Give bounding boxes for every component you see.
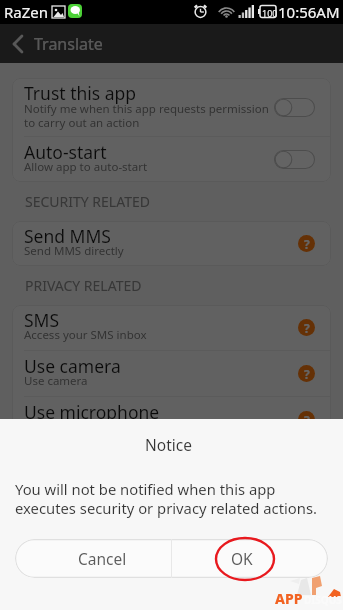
button[interactable]: Use camera bbox=[12, 351, 331, 396]
staticText: DISQUS bbox=[304, 593, 342, 607]
button[interactable]: Cancel bbox=[15, 539, 171, 578]
staticText: Use microphone bbox=[24, 400, 160, 424]
staticText: APP bbox=[275, 589, 303, 608]
staticText: Send MMS directly bbox=[24, 243, 124, 259]
staticText: PRIVACY RELATED bbox=[25, 276, 142, 295]
button[interactable]: Toggle bbox=[274, 150, 315, 169]
staticText: Trust this app bbox=[24, 81, 137, 105]
button[interactable]: Back bbox=[6, 32, 30, 56]
button[interactable]: SMS bbox=[12, 305, 331, 350]
button[interactable]: OK bbox=[172, 539, 328, 578]
button[interactable]: Use microphone bbox=[12, 397, 331, 442]
button[interactable]: Help bbox=[298, 411, 315, 428]
staticText: ? bbox=[304, 320, 310, 336]
button[interactable]: Help bbox=[298, 319, 315, 336]
button[interactable]: Toggle bbox=[274, 98, 315, 117]
staticText: RaZen bbox=[4, 2, 49, 22]
button[interactable]: Help bbox=[298, 235, 315, 252]
staticText: Translate bbox=[34, 33, 103, 55]
staticText: Notify me when this app requests permiss… bbox=[24, 101, 269, 131]
staticText: 10:56AM bbox=[278, 2, 340, 22]
button[interactable]: Send MMS bbox=[12, 221, 331, 266]
staticText: ? bbox=[304, 236, 310, 252]
staticText: Allow app to auto-start bbox=[24, 159, 148, 175]
staticText: Use camera bbox=[24, 354, 121, 378]
staticText: Send MMS bbox=[24, 224, 111, 248]
staticText: ? bbox=[304, 366, 310, 382]
button[interactable]: Help bbox=[298, 365, 315, 382]
staticText: Access your SMS inbox bbox=[24, 327, 147, 343]
staticText: SECURITY RELATED bbox=[25, 192, 150, 211]
button[interactable]: Trust this app bbox=[12, 78, 331, 136]
staticText: SMS bbox=[24, 308, 60, 332]
button[interactable]: Auto-start bbox=[12, 137, 331, 182]
staticText: OK bbox=[231, 548, 253, 569]
staticText: You will not be notified when this app e… bbox=[15, 479, 333, 518]
staticText: ? bbox=[304, 412, 310, 428]
staticText: Cancel bbox=[78, 548, 127, 569]
staticText: Auto-start bbox=[24, 140, 107, 164]
staticText: Notice bbox=[0, 434, 337, 455]
staticText: Use camera bbox=[24, 373, 88, 389]
staticText: 100 bbox=[262, 7, 278, 19]
